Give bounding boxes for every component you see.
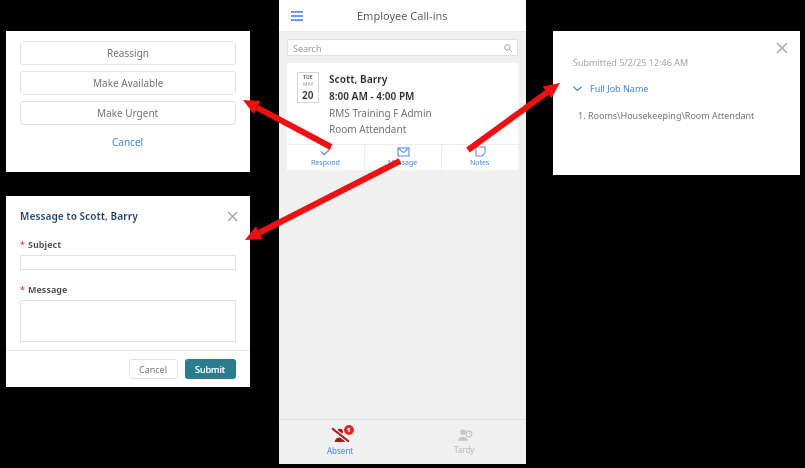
staticText: Subject — [28, 238, 62, 250]
staticText: Search — [293, 42, 504, 54]
staticText: MAY — [303, 81, 314, 88]
staticText: * — [20, 283, 25, 295]
staticText: Respond — [311, 158, 340, 168]
button[interactable] — [20, 300, 236, 342]
button[interactable]: Notes — [442, 145, 518, 170]
button[interactable]: Message — [365, 145, 441, 170]
staticText: Make Urgent — [97, 106, 159, 120]
button[interactable]: Make Urgent — [20, 101, 236, 125]
button[interactable]: Reassign — [20, 41, 236, 65]
button[interactable]: Close — [774, 40, 790, 56]
staticText: Message to Scott, Barry — [20, 209, 224, 223]
staticText: RMS Training F Admin — [329, 106, 432, 120]
button[interactable]: 1 — [279, 420, 402, 464]
staticText: 20 — [302, 88, 314, 102]
staticText: Message — [28, 283, 68, 295]
button[interactable]: Submit — [185, 359, 236, 379]
staticText: 1 — [347, 426, 351, 434]
staticText: Tardy — [454, 444, 475, 455]
staticText: Submitted 5/2/25 12:46 AM — [573, 56, 689, 68]
staticText: * — [20, 238, 25, 250]
staticText: Make Available — [93, 76, 164, 90]
button[interactable]: Menu — [288, 7, 306, 25]
staticText: Absent — [327, 445, 354, 456]
staticText: Notes — [470, 158, 490, 168]
button[interactable] — [20, 255, 236, 270]
staticText: Reassign — [107, 46, 149, 60]
staticText: Cancel — [139, 363, 168, 375]
button[interactable]: Respond — [287, 145, 364, 170]
staticText: Message — [388, 158, 418, 168]
staticText: TUE — [303, 74, 313, 81]
staticText: Submit — [195, 363, 226, 375]
button[interactable]: Tardy — [402, 420, 526, 464]
staticText: Scott, Barry — [329, 72, 388, 86]
staticText: Full Job Name — [590, 82, 649, 94]
button[interactable]: Close — [224, 208, 240, 224]
button[interactable]: Full Job Name — [573, 82, 655, 94]
staticText: Employee Call-ins — [357, 8, 448, 23]
button[interactable]: Make Available — [20, 71, 236, 95]
button[interactable]: Search — [287, 39, 518, 56]
staticText: Room Attendant — [329, 122, 407, 136]
button[interactable]: Cancel — [129, 359, 178, 379]
staticText: 8:00 AM - 4:00 PM — [329, 89, 415, 103]
button[interactable]: Cancel — [20, 131, 236, 153]
staticText: Cancel — [112, 135, 144, 149]
staticText: 1. Rooms\Housekeeping\Room Attendant — [578, 109, 755, 121]
